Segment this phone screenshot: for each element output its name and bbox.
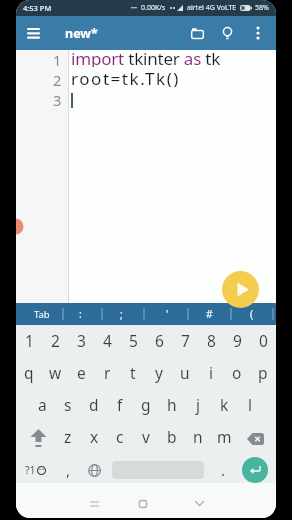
button[interactable]: j (185, 388, 211, 420)
button[interactable]: . (204, 455, 242, 485)
button[interactable]: c (107, 420, 133, 453)
staticText: u (180, 362, 190, 383)
staticText: o (232, 362, 242, 383)
button[interactable]: u (172, 356, 198, 388)
button[interactable] (214, 16, 240, 50)
button[interactable]: z (55, 420, 81, 453)
button[interactable]: t (120, 356, 146, 388)
staticText: Tab (34, 308, 50, 321)
staticText: 7 (181, 330, 190, 351)
button[interactable]: ( (236, 303, 268, 325)
button[interactable]: 5 (120, 325, 146, 356)
button[interactable]: : (64, 303, 96, 325)
button[interactable] (123, 486, 163, 518)
staticText: airtel 4G VoLTE (187, 3, 237, 13)
staticText: ··· (131, 3, 137, 13)
staticText: g (141, 394, 151, 415)
button[interactable]: g (133, 388, 159, 420)
button[interactable]: k (211, 388, 237, 420)
button[interactable]: q (16, 356, 42, 388)
button[interactable]: 6 (146, 325, 172, 356)
staticText: q (24, 362, 34, 383)
staticText: 9 (233, 330, 242, 351)
button[interactable]: 0 (250, 325, 276, 356)
button[interactable]: 8 (198, 325, 224, 356)
button[interactable]: 7 (172, 325, 198, 356)
button[interactable]: e (68, 356, 94, 388)
button[interactable]: a (29, 388, 55, 420)
button[interactable] (16, 16, 50, 50)
button[interactable]: # (193, 303, 225, 325)
staticText: 58% (255, 3, 269, 13)
button[interactable]: v (133, 420, 159, 453)
button[interactable] (81, 455, 107, 485)
staticText: i (209, 362, 213, 383)
button[interactable] (242, 457, 268, 483)
button[interactable]: , (55, 455, 81, 485)
staticText: y (155, 362, 163, 383)
button[interactable]: ?1 (16, 455, 55, 485)
button[interactable] (16, 420, 55, 453)
staticText: 2 (53, 70, 62, 90)
staticText: 1 (53, 50, 62, 70)
staticText: a (38, 394, 47, 415)
button[interactable]: i (198, 356, 224, 388)
button[interactable] (184, 16, 210, 50)
staticText: m (217, 426, 232, 447)
staticText: : (79, 307, 82, 321)
staticText: 1 (25, 330, 34, 351)
staticText: k (220, 394, 229, 415)
staticText: 4:53 PM (23, 3, 52, 13)
button[interactable]: ' (151, 303, 183, 325)
button[interactable]: r (94, 356, 120, 388)
button[interactable]: ; (105, 303, 137, 325)
staticText: 3 (53, 90, 62, 110)
staticText: e (77, 362, 86, 383)
button[interactable]: 1 (16, 325, 42, 356)
staticText: ( (250, 307, 254, 321)
button[interactable]: 4 (94, 325, 120, 356)
staticText: v (142, 426, 150, 447)
button[interactable]: d (81, 388, 107, 420)
button[interactable]: w (42, 356, 68, 388)
button[interactable] (179, 486, 219, 518)
staticText: new* (65, 25, 98, 42)
button[interactable] (237, 420, 276, 453)
button[interactable]: x (81, 420, 107, 453)
staticText: 0.00K/s (141, 3, 166, 13)
staticText: 3 (77, 330, 86, 351)
button[interactable]: n (185, 420, 211, 453)
staticText: x (90, 426, 99, 447)
staticText: 4 (103, 330, 112, 351)
button[interactable]: 2 (42, 325, 68, 356)
button[interactable]: b (159, 420, 185, 453)
staticText: root=tk.Tk() (71, 67, 181, 87)
button[interactable]: m (211, 420, 237, 453)
button[interactable] (222, 271, 259, 308)
button[interactable]: f (107, 388, 133, 420)
staticText: 8 (207, 330, 216, 351)
staticText: w (49, 362, 62, 383)
button[interactable]: l (237, 388, 263, 420)
button[interactable]: p (250, 356, 276, 388)
button[interactable]: h (159, 388, 185, 420)
staticText: 0 (259, 330, 268, 351)
button[interactable]: 9 (224, 325, 250, 356)
staticText: h (167, 394, 177, 415)
staticText: t (130, 362, 136, 383)
button[interactable]: 3 (68, 325, 94, 356)
staticText: j (196, 394, 200, 415)
staticText: 5 (129, 330, 138, 351)
button[interactable]: o (224, 356, 250, 388)
button[interactable] (246, 16, 270, 50)
staticText: l (248, 394, 252, 415)
button[interactable] (74, 486, 114, 518)
staticText: c (116, 426, 124, 447)
button[interactable]: s (55, 388, 81, 420)
staticText: p (258, 362, 268, 383)
button[interactable]: Tab (26, 303, 58, 325)
staticText: ; (120, 307, 123, 321)
staticText: 2 (51, 330, 60, 351)
button[interactable]: y (146, 356, 172, 388)
